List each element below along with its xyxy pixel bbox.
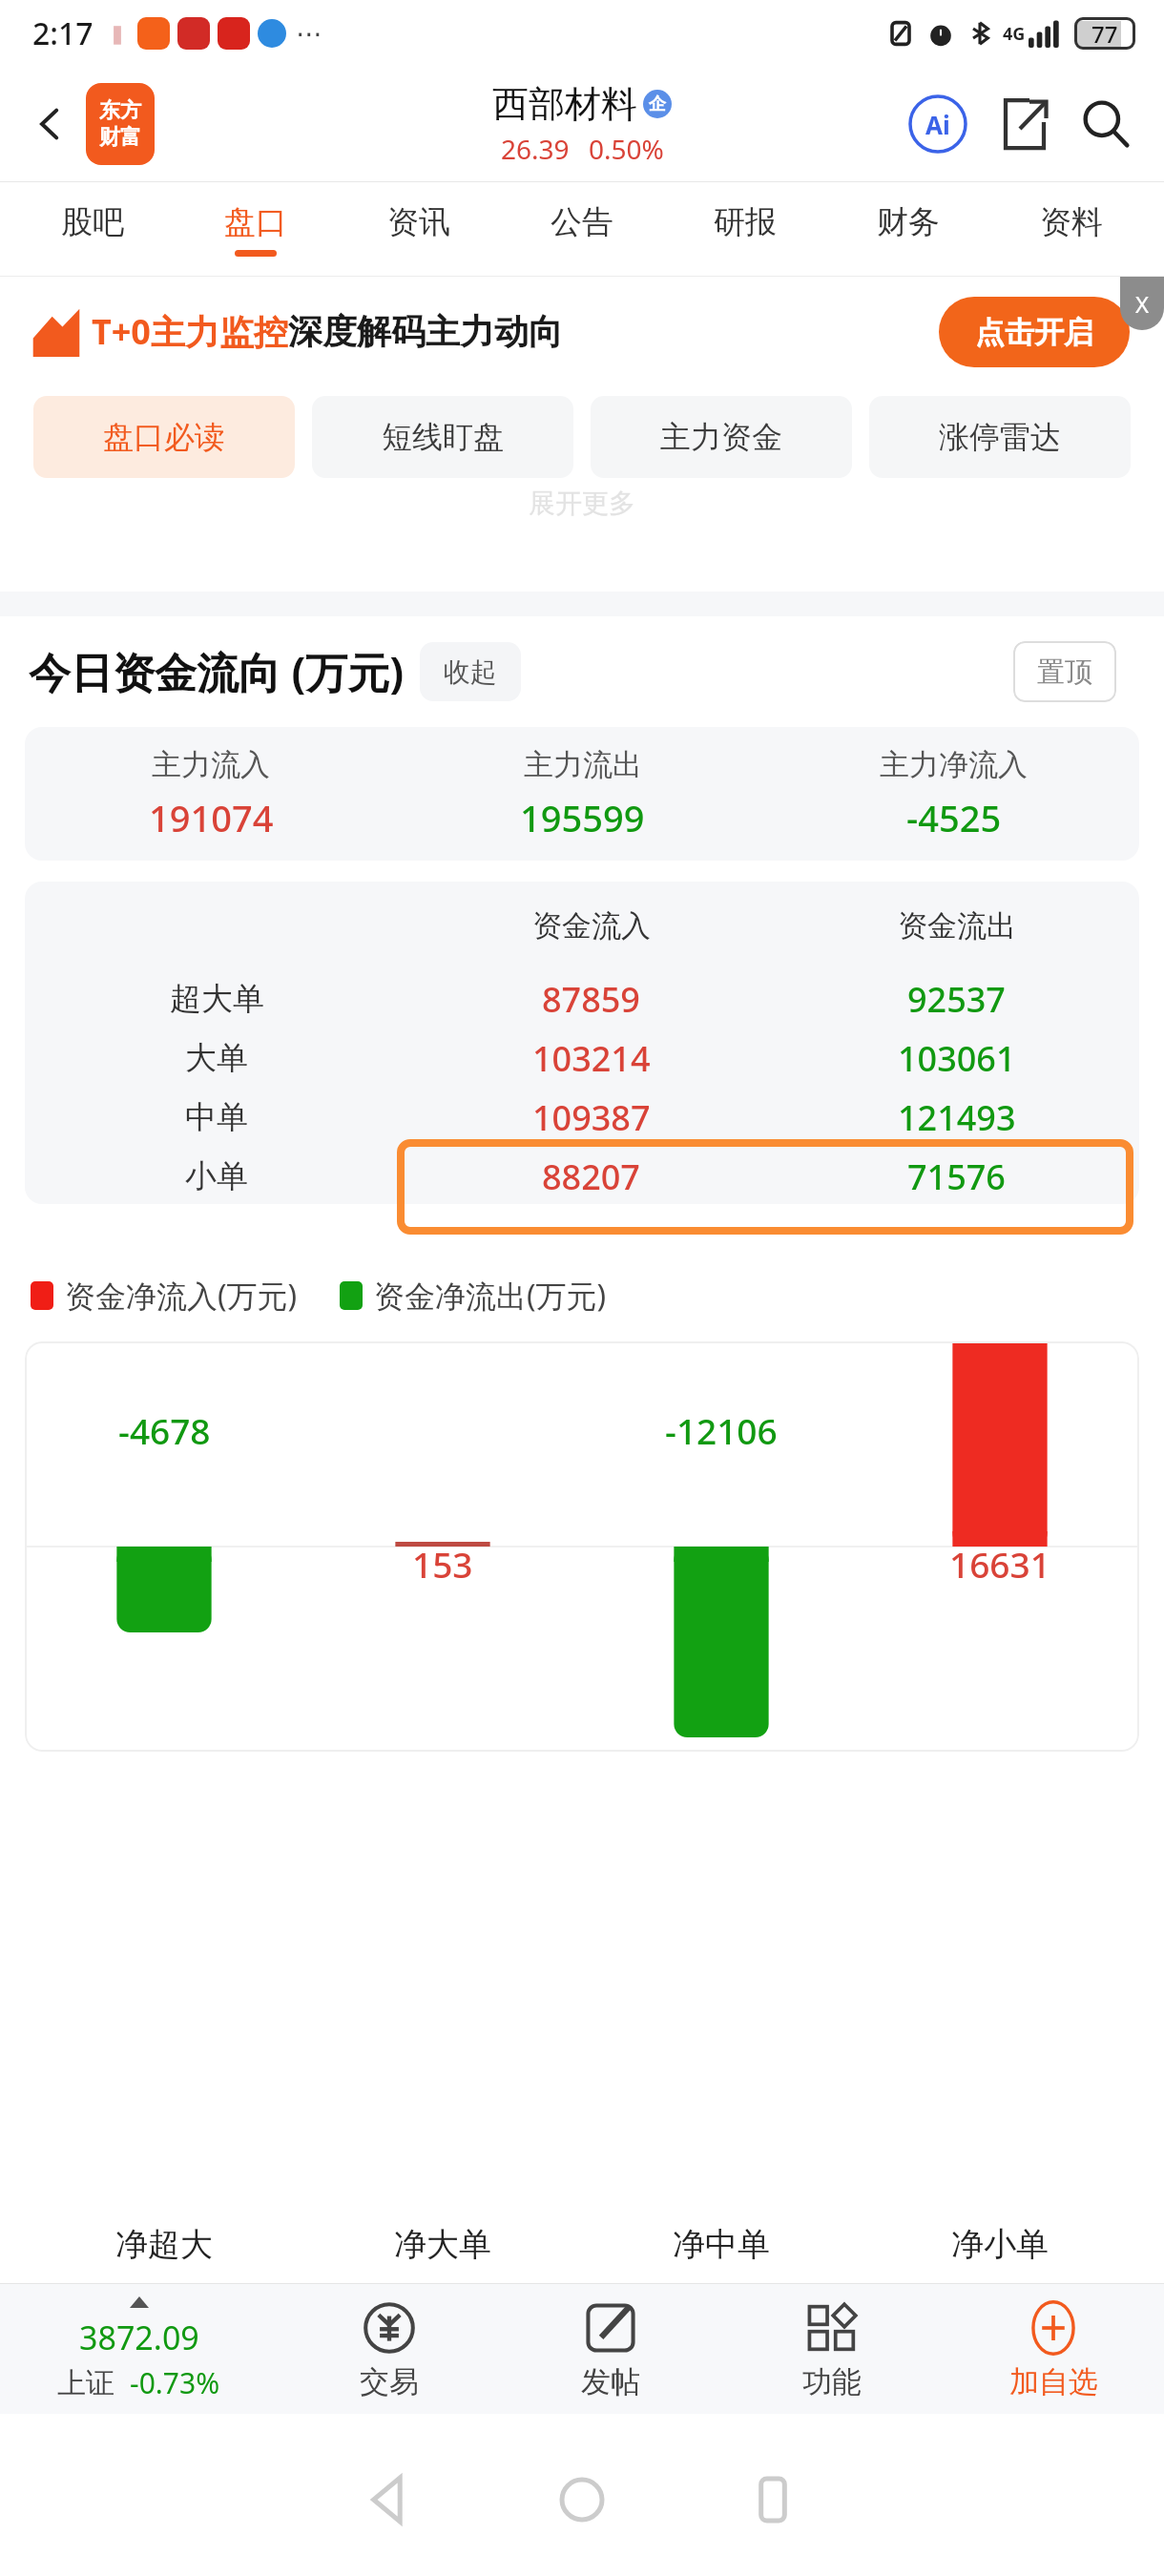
staticText: 资金净流入(万元) xyxy=(65,1275,298,1317)
staticText: 主力流出 xyxy=(524,746,642,783)
staticText: 盘口 xyxy=(224,202,287,242)
staticText: 置顶 xyxy=(1037,654,1092,690)
staticText: 103061 xyxy=(898,1035,1016,1082)
staticText: 财富 xyxy=(99,124,141,151)
staticText: 净超大 xyxy=(115,2224,213,2265)
button[interactable]: -4678 xyxy=(25,1341,1139,1752)
staticText: 2:17 xyxy=(32,12,94,54)
staticText: 0.50% xyxy=(589,131,664,167)
button[interactable]: 盘口必读 xyxy=(33,396,295,478)
button[interactable]: Back xyxy=(21,95,78,153)
button[interactable]: 3872.09 xyxy=(0,2284,278,2414)
staticText: 企 xyxy=(649,93,666,115)
staticText: 资金流入 xyxy=(532,907,651,945)
staticText: 股吧 xyxy=(61,202,124,242)
staticText: 资料 xyxy=(1040,202,1103,242)
staticText: 主力净流入 xyxy=(880,746,1028,783)
staticText: 71576 xyxy=(907,1153,1006,1200)
button[interactable]: Search xyxy=(1072,91,1139,157)
staticText: 191074 xyxy=(149,793,274,842)
staticText: 4G xyxy=(1003,22,1026,46)
staticText: 交易 xyxy=(360,2363,419,2400)
staticText: 东方 xyxy=(99,97,141,124)
staticText: 上证 xyxy=(57,2365,114,2401)
staticText: 大单 xyxy=(185,1038,248,1078)
staticText: 净中单 xyxy=(673,2224,770,2265)
staticText: 主力流入 xyxy=(152,746,270,783)
button[interactable]: 短线盯盘 xyxy=(312,396,573,478)
staticText: 盘口必读 xyxy=(103,418,225,456)
staticText: 26.39 xyxy=(501,131,570,167)
staticText: 153 xyxy=(412,1540,473,1588)
staticText: 中单 xyxy=(185,1097,248,1137)
staticText: 展开更多 xyxy=(529,487,635,520)
staticText: X xyxy=(1135,288,1150,320)
button[interactable]: 超大单 xyxy=(25,969,1139,1028)
button[interactable]: 小单 xyxy=(25,1147,1139,1206)
staticText: 加自选 xyxy=(1009,2363,1098,2400)
staticText: 103214 xyxy=(532,1035,651,1082)
button[interactable]: 交易 xyxy=(278,2284,500,2414)
staticText: 超大单 xyxy=(170,979,264,1019)
button[interactable]: Share xyxy=(992,93,1055,156)
button[interactable]: 资讯 xyxy=(337,181,500,277)
button[interactable]: 研报 xyxy=(663,181,826,277)
button[interactable]: 加自选 xyxy=(943,2284,1164,2414)
staticText: 净小单 xyxy=(951,2224,1049,2265)
staticText: 净大单 xyxy=(394,2224,491,2265)
staticText: 3872.09 xyxy=(79,2316,199,2359)
staticText: 92537 xyxy=(907,976,1006,1023)
button[interactable]: Back xyxy=(334,2442,448,2557)
staticText: 功能 xyxy=(802,2363,862,2400)
button[interactable]: Home xyxy=(525,2442,639,2557)
staticText: -4678 xyxy=(118,1406,211,1454)
staticText: ⋯ xyxy=(296,18,322,50)
staticText: 88207 xyxy=(542,1153,640,1200)
button[interactable]: Close xyxy=(1120,277,1164,330)
button[interactable]: 中单 xyxy=(25,1088,1139,1147)
staticText: 深度解码主力动向 xyxy=(288,310,563,353)
staticText: 收起 xyxy=(444,655,497,689)
button[interactable]: 点击开启 xyxy=(939,297,1130,367)
button[interactable]: 置顶 xyxy=(1013,641,1116,702)
button[interactable]: 收起 xyxy=(420,642,521,701)
staticText: 资金净流出(万元) xyxy=(374,1275,607,1317)
staticText: 点击开启 xyxy=(975,314,1093,351)
staticText: 资金流出 xyxy=(898,907,1016,945)
staticText: 主力资金 xyxy=(660,418,782,456)
staticText: 研报 xyxy=(714,202,777,242)
staticText: -4525 xyxy=(906,793,1002,842)
staticText: 195599 xyxy=(520,793,645,842)
button[interactable]: AI xyxy=(904,91,971,157)
button[interactable]: 功能 xyxy=(721,2284,943,2414)
button[interactable]: 公告 xyxy=(500,181,663,277)
staticText: 西部材料 xyxy=(492,81,637,127)
button[interactable]: Recents xyxy=(716,2442,830,2557)
staticText: -12106 xyxy=(665,1406,778,1454)
button[interactable]: 大单 xyxy=(25,1028,1139,1088)
staticText: 发帖 xyxy=(581,2363,640,2400)
button[interactable]: 财务 xyxy=(826,181,989,277)
button[interactable]: 盘口 xyxy=(174,181,337,277)
staticText: 小单 xyxy=(185,1156,248,1196)
staticText: 财务 xyxy=(877,202,940,242)
staticText: 109387 xyxy=(532,1094,651,1141)
button[interactable]: 发帖 xyxy=(500,2284,721,2414)
staticText: 资讯 xyxy=(387,202,450,242)
button[interactable]: 股吧 xyxy=(11,181,174,277)
staticText: 涨停雷达 xyxy=(939,418,1061,456)
staticText: Ai xyxy=(925,108,950,141)
button[interactable]: 涨停雷达 xyxy=(869,396,1131,478)
staticText: -0.73% xyxy=(130,2363,220,2402)
staticText: 16631 xyxy=(949,1540,1050,1588)
staticText: 77 xyxy=(1091,18,1118,50)
staticText: 87859 xyxy=(542,976,640,1023)
button[interactable]: 主力流入 xyxy=(25,727,1139,861)
staticText: 公告 xyxy=(551,202,613,242)
staticText: 短线盯盘 xyxy=(382,418,504,456)
button[interactable]: 主力资金 xyxy=(591,396,852,478)
staticText: T+0主力监控 xyxy=(92,308,288,355)
button[interactable]: 东方 xyxy=(86,83,155,165)
staticText: 今日资金流向 (万元) xyxy=(29,643,405,700)
button[interactable]: 资料 xyxy=(989,181,1153,277)
